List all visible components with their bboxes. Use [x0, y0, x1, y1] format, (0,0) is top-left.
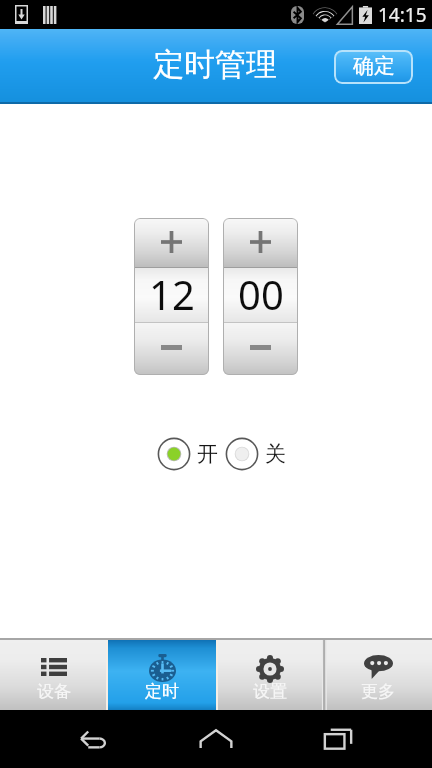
button[interactable]: 定时 — [108, 638, 216, 710]
button[interactable] — [223, 323, 298, 375]
button[interactable]: 设置 — [216, 638, 324, 710]
button[interactable]: Back — [66, 715, 122, 763]
button[interactable] — [134, 218, 209, 267]
staticText: 关 — [265, 441, 286, 467]
button[interactable]: 设备 — [0, 638, 108, 710]
staticText: 设备 — [37, 681, 71, 702]
button[interactable] — [223, 218, 298, 267]
button[interactable]: 开 — [157, 437, 218, 471]
staticText: 12 — [149, 267, 195, 321]
button[interactable]: 关 — [225, 437, 286, 471]
button[interactable]: Recent apps — [310, 715, 366, 763]
button[interactable]: Home — [188, 715, 244, 763]
staticText: 更多 — [361, 681, 395, 702]
button[interactable]: 更多 — [324, 638, 432, 710]
staticText: 确定 — [353, 53, 395, 79]
staticText: 开 — [197, 441, 218, 467]
button[interactable]: 确定 — [334, 50, 413, 84]
staticText: 设置 — [253, 681, 287, 702]
staticText: 定时 — [145, 681, 179, 702]
staticText: 定时管理 — [153, 45, 277, 84]
staticText: 14:15 — [378, 2, 427, 28]
button[interactable] — [134, 323, 209, 375]
staticText: 00 — [238, 267, 284, 321]
